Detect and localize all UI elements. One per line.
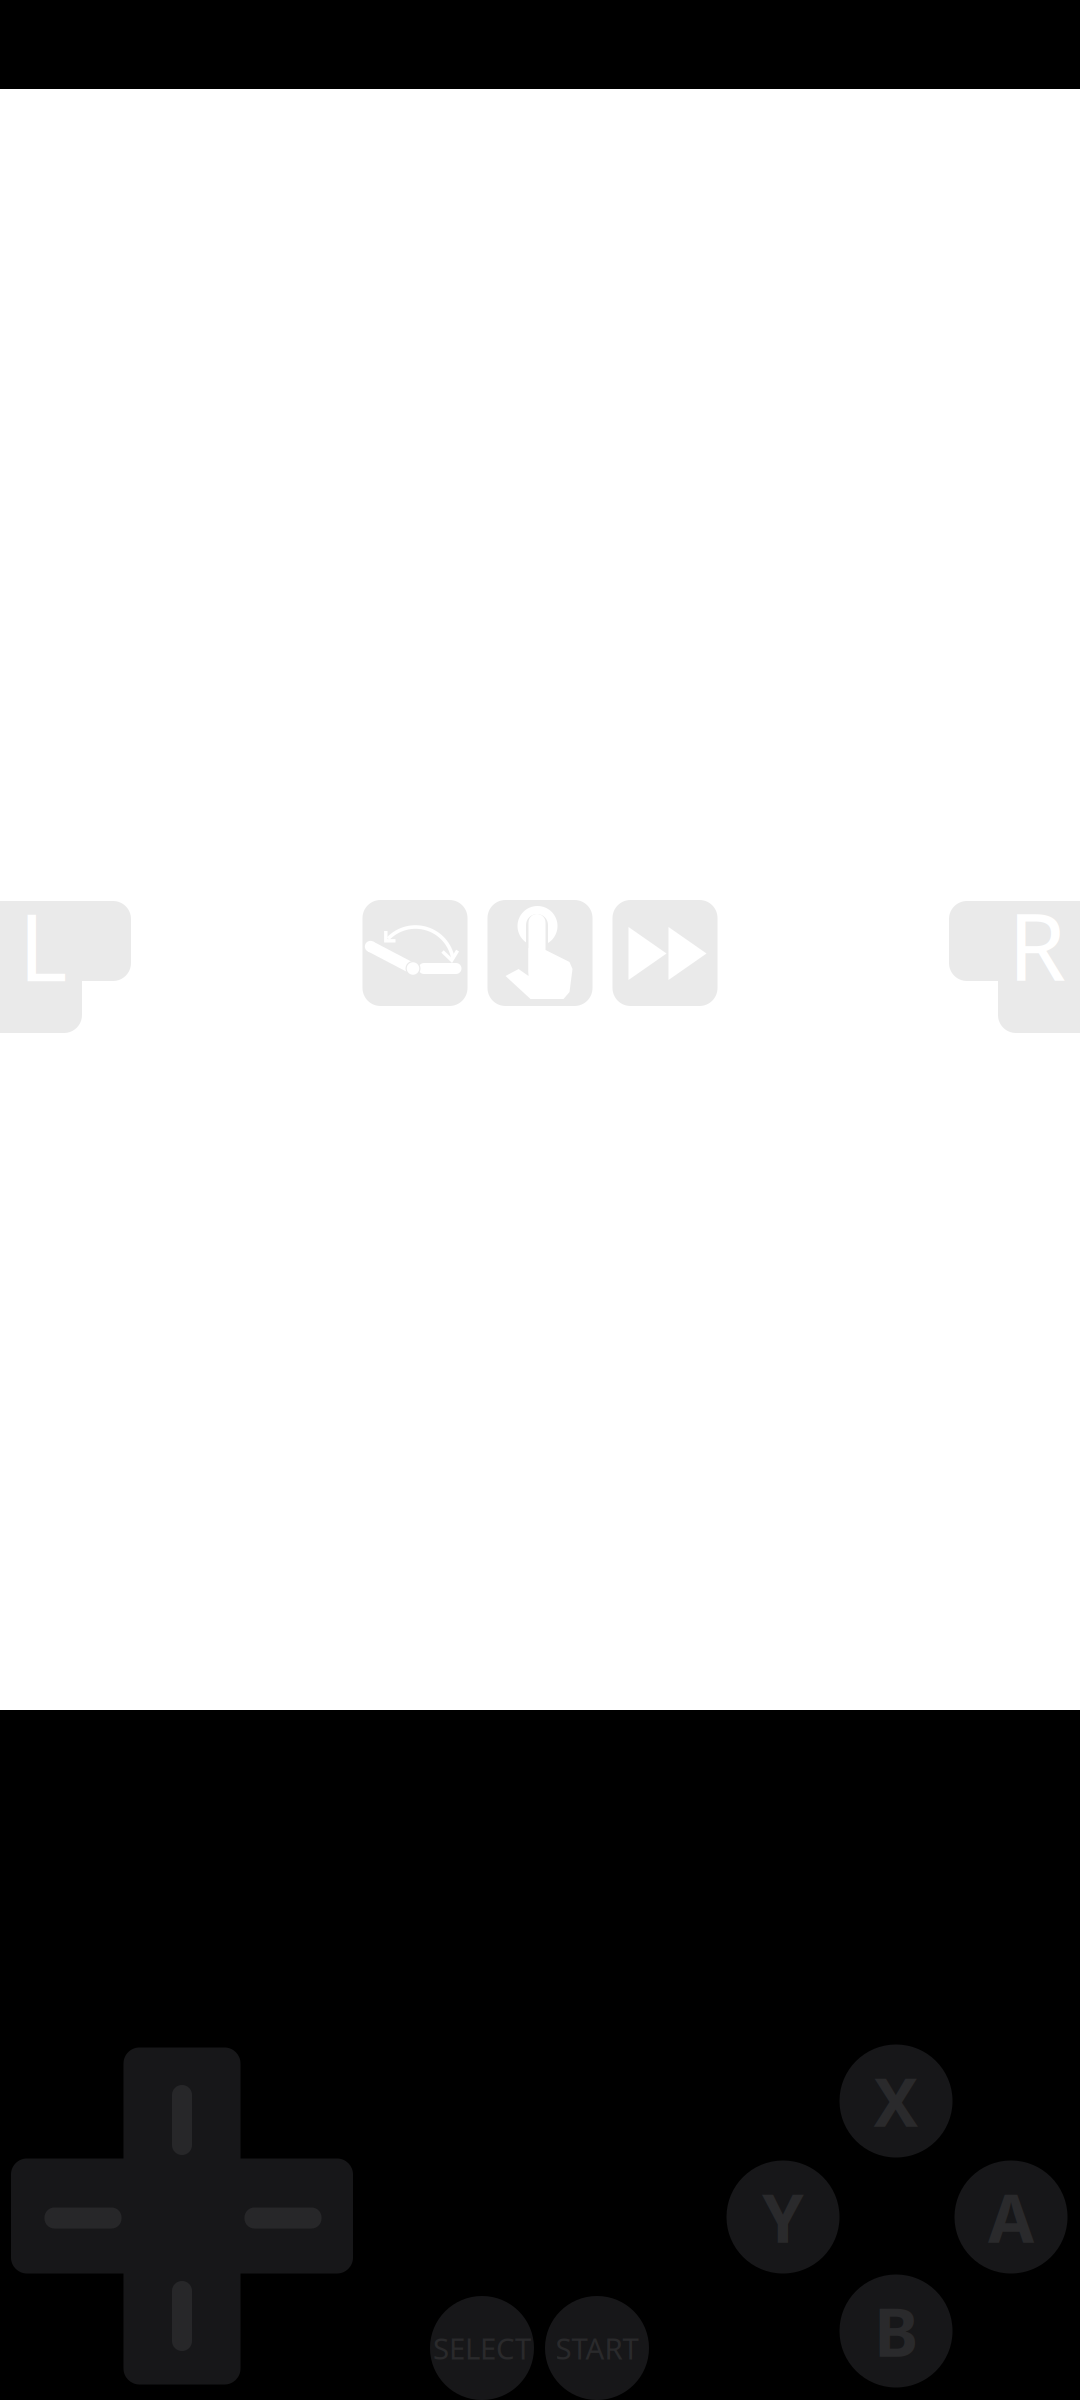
button[interactable]: SELECT <box>430 2296 534 2400</box>
button[interactable]: A <box>954 2160 1067 2273</box>
button[interactable]: Directional pad <box>2 2036 362 2396</box>
staticText: START <box>555 2328 638 2367</box>
button[interactable]: Rotate screen <box>362 900 467 1006</box>
button[interactable]: Y <box>726 2160 839 2273</box>
staticText: B <box>874 2287 918 2375</box>
button[interactable]: R shoulder button <box>949 901 1080 1033</box>
button[interactable]: B <box>839 2274 952 2387</box>
button[interactable]: X <box>839 2044 952 2157</box>
button[interactable]: START <box>545 2296 649 2400</box>
staticText: A <box>988 2173 1034 2261</box>
staticText: L <box>18 883 67 1007</box>
button[interactable]: Fast forward <box>612 900 717 1006</box>
staticText: Y <box>762 2173 804 2261</box>
staticText: SELECT <box>433 2328 531 2367</box>
staticText: X <box>873 2057 918 2145</box>
button[interactable]: Touch screen <box>487 900 592 1006</box>
button[interactable]: L shoulder button <box>0 901 131 1033</box>
staticText: R <box>1008 883 1066 1007</box>
